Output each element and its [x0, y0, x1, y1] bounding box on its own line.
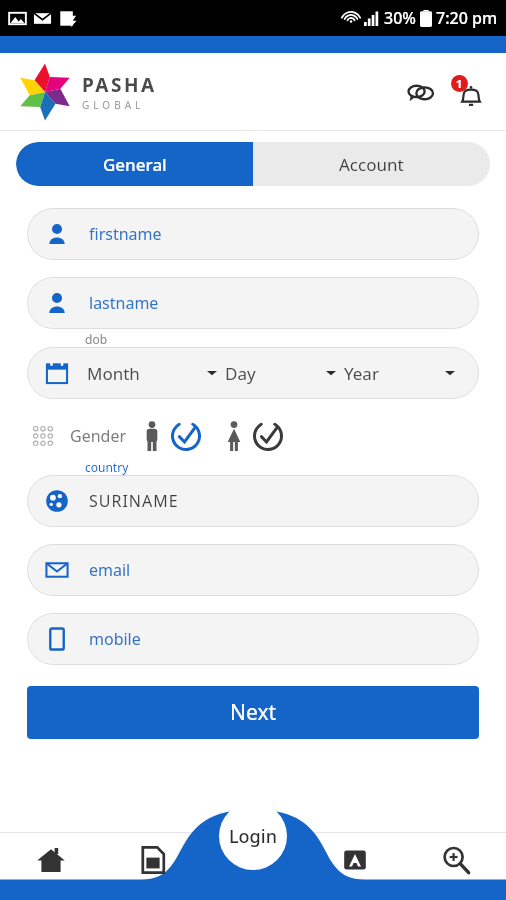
- staticText: firstname: [89, 223, 162, 245]
- staticText: Year: [344, 362, 379, 385]
- staticText: Gender: [70, 425, 127, 447]
- button[interactable]: firstname: [27, 208, 479, 260]
- button[interactable]: email: [27, 544, 479, 596]
- button[interactable]: Month: [27, 347, 479, 399]
- staticText: Day: [225, 362, 256, 385]
- staticText: Month: [87, 362, 140, 385]
- button[interactable]: Search: [405, 832, 506, 900]
- staticText: email: [89, 559, 131, 581]
- button[interactable]: Login: [219, 802, 287, 870]
- button[interactable]: Year: [344, 347, 463, 399]
- button[interactable]: Next: [27, 686, 479, 739]
- button[interactable]: Female: [227, 421, 283, 451]
- button[interactable]: Home: [0, 832, 102, 900]
- staticText: lastname: [89, 292, 159, 314]
- button[interactable]: mobile: [27, 613, 479, 665]
- button[interactable]: SURINAME: [27, 475, 479, 527]
- staticText: country: [85, 459, 129, 475]
- staticText: Login: [229, 824, 277, 849]
- staticText: Account: [339, 153, 404, 176]
- staticText: mobile: [89, 628, 141, 650]
- staticText: GLOBAL: [82, 98, 145, 112]
- staticText: General: [103, 153, 167, 176]
- button[interactable]: lastname: [27, 277, 479, 329]
- staticText: SURINAME: [89, 490, 179, 512]
- staticText: 30%: [384, 7, 416, 29]
- staticText: 1: [456, 76, 463, 91]
- button[interactable]: Account: [253, 142, 490, 186]
- button[interactable]: Month: [87, 347, 225, 399]
- button[interactable]: Gallery: [102, 832, 203, 900]
- button[interactable]: Male: [145, 421, 201, 451]
- staticText: Next: [230, 698, 277, 727]
- staticText: 7:20 pm: [436, 7, 498, 29]
- staticText: PASHA: [82, 72, 157, 98]
- staticText: dob: [85, 331, 108, 347]
- button[interactable]: General: [16, 142, 253, 186]
- button[interactable]: Articles: [304, 832, 405, 900]
- button[interactable]: Notifications: [454, 75, 488, 109]
- button[interactable]: Messages: [406, 77, 436, 107]
- button[interactable]: Day: [225, 347, 344, 399]
